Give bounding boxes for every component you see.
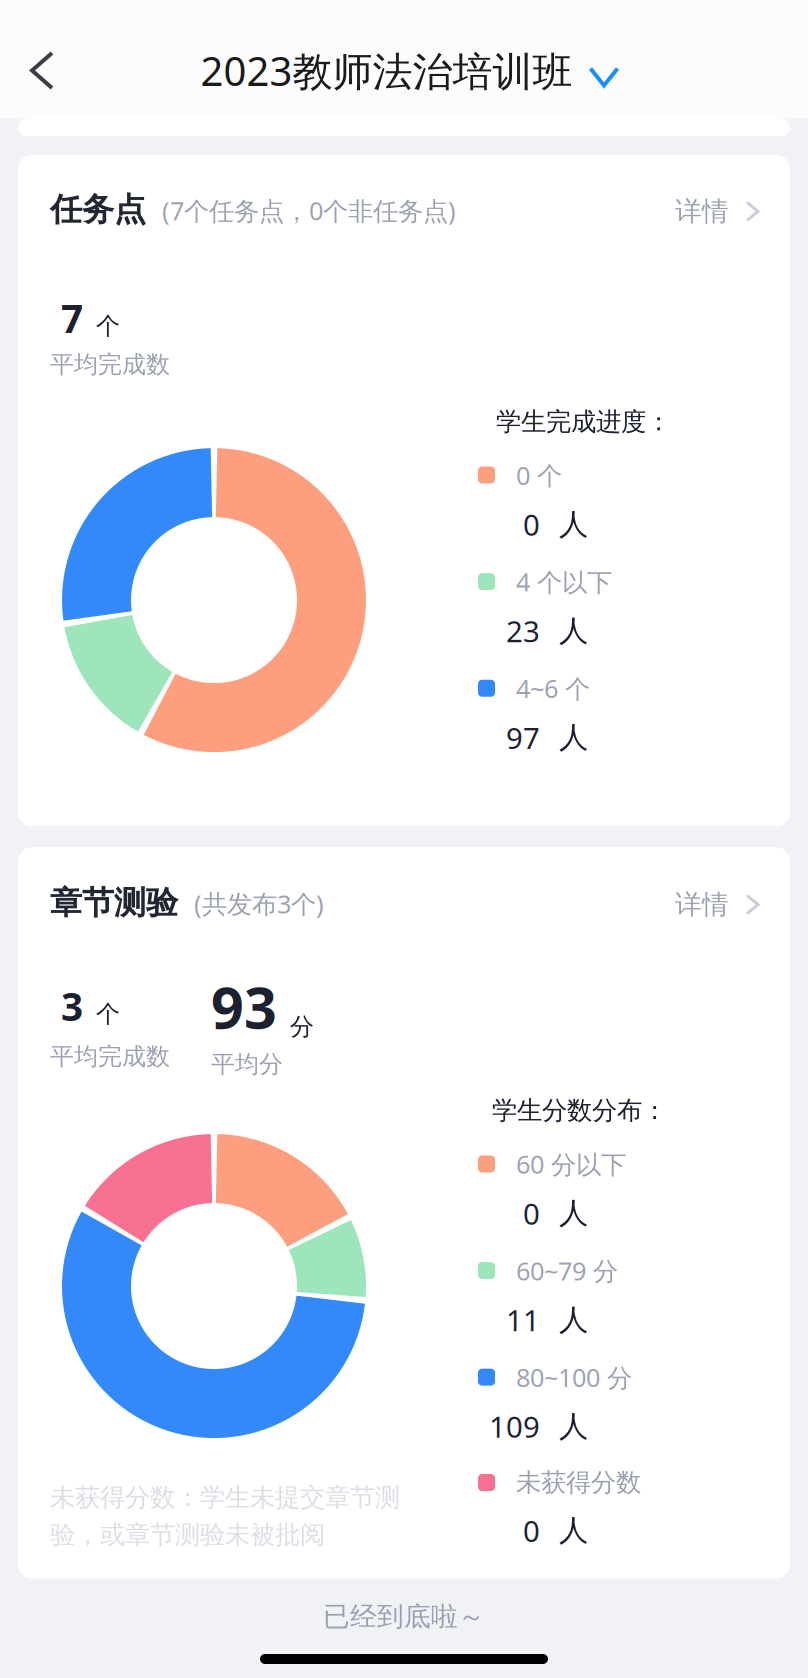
staticText: 0 个 — [516, 458, 562, 492]
staticText: 109 — [489, 1407, 540, 1446]
button[interactable]: 2023教师法治培训班 — [200, 44, 617, 97]
button[interactable]: 详情 — [675, 195, 758, 228]
staticText: 人 — [559, 1512, 588, 1548]
staticText: (共发布3个) — [194, 887, 324, 920]
staticText: 60 分以下 — [516, 1147, 626, 1181]
staticText: 0 — [523, 1511, 540, 1550]
staticText: 人 — [559, 1195, 588, 1231]
staticText: 学生完成进度： — [496, 406, 671, 437]
staticText: 分 — [290, 1012, 314, 1042]
staticText: 平均完成数 — [50, 350, 170, 379]
staticText: 4~6 个 — [516, 671, 590, 705]
staticText: 0 — [523, 1194, 540, 1233]
staticText: 人 — [559, 1302, 588, 1338]
staticText: 97 — [506, 718, 540, 757]
staticText: 平均完成数 — [50, 1042, 170, 1071]
button[interactable]: 详情 — [675, 888, 758, 921]
staticText: 7 — [61, 292, 83, 344]
staticText: 个 — [96, 311, 120, 341]
staticText: 未获得分数：学生未提交章节测验，或章节测验未被批阅 — [50, 1482, 400, 1550]
staticText: 个 — [96, 999, 120, 1029]
staticText: 平均分 — [211, 1050, 283, 1079]
staticText: (7个任务点，0个非任务点) — [162, 194, 456, 227]
staticText: 60~79 分 — [516, 1254, 618, 1287]
staticText: 已经到底啦～ — [323, 1600, 485, 1633]
staticText: 93 — [211, 968, 277, 1044]
staticText: 章节测验 — [50, 883, 178, 922]
staticText: 人 — [559, 719, 588, 755]
staticText: 详情 — [675, 888, 729, 921]
staticText: 4 个以下 — [516, 565, 612, 598]
staticText: 任务点 — [50, 190, 146, 229]
staticText: 未获得分数 — [516, 1467, 641, 1498]
staticText: 0 — [523, 505, 540, 544]
staticText: 2023教师法治培训班 — [200, 44, 572, 97]
button[interactable]: Back — [0, 38, 80, 103]
staticText: 详情 — [675, 195, 729, 228]
staticText: 人 — [559, 506, 588, 542]
staticText: 11 — [506, 1300, 540, 1339]
staticText: 学生分数分布： — [492, 1095, 667, 1126]
staticText: 3 — [61, 980, 83, 1032]
staticText: 80~100 分 — [516, 1360, 632, 1394]
staticText: 23 — [506, 611, 540, 650]
staticText: 人 — [559, 1408, 588, 1444]
staticText: 人 — [559, 613, 588, 649]
